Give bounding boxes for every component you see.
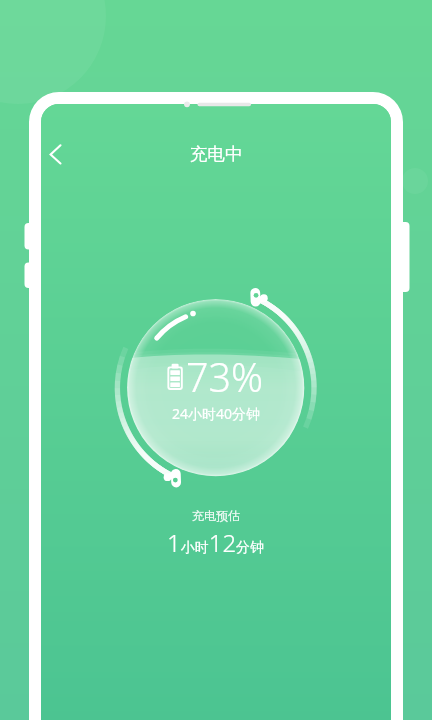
- staticText: 充电预估: [192, 508, 240, 523]
- staticText: 充电中: [190, 143, 243, 165]
- button[interactable]: Back: [41, 140, 69, 170]
- staticText: 24小时40分钟: [172, 404, 261, 423]
- staticText: 73%: [186, 350, 264, 404]
- staticText: 1小时12分钟: [167, 526, 265, 559]
